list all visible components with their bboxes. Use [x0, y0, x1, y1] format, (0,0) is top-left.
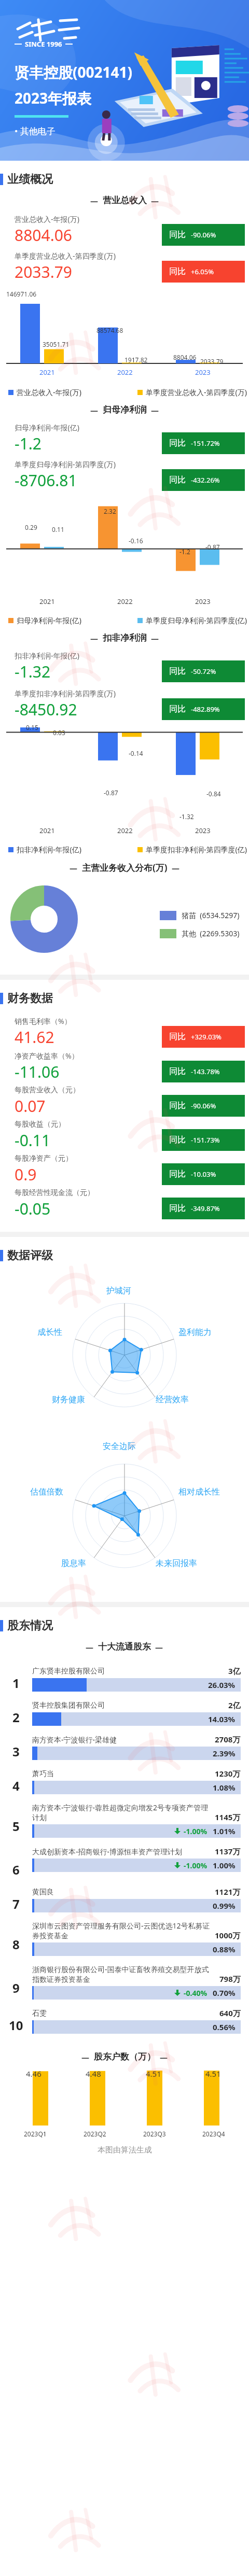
staticText: 0.11	[52, 525, 64, 533]
staticText: 0.99%	[213, 1901, 236, 1911]
staticText: -143.78%	[191, 1067, 220, 1076]
staticText: 2.39%	[213, 1748, 236, 1758]
button[interactable]: 同比	[162, 660, 245, 682]
staticText: 财务健康	[52, 1395, 85, 1405]
button[interactable]: 8	[0, 1916, 249, 1959]
staticText: 2.32	[104, 507, 116, 515]
staticText: —	[81, 2052, 90, 2062]
staticText: -1.32	[15, 661, 51, 682]
button[interactable]: 5	[0, 1797, 249, 1841]
staticText: 2023年报表	[15, 88, 92, 108]
staticText: 7	[12, 1895, 20, 1912]
staticText: 同比	[169, 230, 186, 240]
button[interactable]: 1	[0, 1660, 249, 1695]
button[interactable]: 2	[0, 1695, 249, 1729]
staticText: —	[155, 1642, 163, 1652]
button[interactable]: 7	[0, 1881, 249, 1916]
button[interactable]: 同比	[162, 224, 245, 246]
staticText: 1137万	[215, 1846, 241, 1856]
button[interactable]: 同比	[162, 469, 245, 491]
staticText: 营业总收入-年报(万)	[15, 214, 79, 224]
staticText: -0.87	[205, 543, 220, 551]
staticText: 0.07	[15, 1095, 46, 1117]
button[interactable]: 9	[0, 1959, 249, 2003]
staticText: 8804.06	[173, 353, 197, 361]
staticText: -482.89%	[191, 705, 220, 714]
staticText: 2021	[39, 826, 55, 835]
staticText: 0.70%	[213, 1988, 236, 1998]
button[interactable]: 3	[0, 1729, 249, 1763]
button[interactable]: 同比	[162, 1198, 245, 1219]
staticText: 单季度营业总收入-第四季度(万)	[15, 251, 116, 261]
staticText: 南方资本-宁波银行-蓉胜超微定向增发2号专项资产管理计划	[32, 1803, 211, 1822]
button[interactable]: 同比	[162, 1163, 245, 1185]
staticText: 9	[12, 1979, 20, 1996]
staticText: -151.73%	[191, 1135, 220, 1145]
staticText: 其他 (2269.5303)	[182, 928, 240, 938]
staticText: 同比	[169, 1066, 186, 1077]
staticText: 每股净资产（元）	[15, 1154, 73, 1163]
staticText: 4.51	[146, 2068, 161, 2079]
staticText: 1121万	[215, 1887, 241, 1897]
staticText: 2022	[117, 826, 133, 835]
staticText: 2023	[195, 597, 211, 606]
staticText: —	[70, 863, 78, 873]
staticText: 同比	[169, 1101, 186, 1111]
staticText: 0.56%	[213, 2022, 236, 2032]
staticText: +6.05%	[191, 267, 214, 276]
staticText: -1.32	[179, 812, 194, 821]
button[interactable]: 同比	[162, 1061, 245, 1082]
staticText: 同比	[169, 704, 186, 714]
button[interactable]: 财务数据	[0, 980, 249, 1009]
button[interactable]: 6	[0, 1841, 249, 1881]
staticText: 股东情况	[7, 1618, 53, 1633]
staticText: 2033.79	[15, 261, 72, 283]
staticText: 净资产收益率（%）	[15, 1051, 79, 1061]
staticText: 2022	[117, 597, 133, 606]
staticText: 本图由算法生成	[98, 2145, 152, 2155]
staticText: -1.00%	[184, 1861, 208, 1870]
button[interactable]: 同比	[162, 698, 245, 720]
staticText: 8	[12, 1936, 20, 1953]
staticText: -90.06%	[191, 1101, 216, 1110]
staticText: 萧巧当	[32, 1769, 211, 1779]
button[interactable]: 数据评级	[0, 1237, 249, 1266]
staticText: 同比	[169, 1169, 186, 1179]
staticText: 销售毛利率（%）	[15, 1016, 72, 1026]
button[interactable]: 同比	[162, 1095, 245, 1117]
staticText: —	[86, 1642, 94, 1652]
staticText: • 其他电子	[15, 125, 56, 137]
button[interactable]: 同比	[162, 1026, 245, 1048]
staticText: 1	[12, 1674, 20, 1692]
button[interactable]: 业绩概况	[0, 161, 249, 190]
button[interactable]: 同比	[162, 261, 245, 283]
staticText: 十大流通股东	[98, 1641, 151, 1652]
button[interactable]: 股东情况	[0, 1607, 249, 1636]
staticText: 0.9	[15, 1164, 37, 1185]
staticText: 营业总收入-年报(万)	[17, 387, 81, 397]
staticText: 14.03%	[208, 1714, 236, 1724]
staticText: 归母净利润	[103, 404, 147, 415]
staticText: -0.40%	[184, 1988, 208, 1998]
staticText: 2023Q3	[143, 2130, 166, 2138]
button[interactable]: 10	[0, 2003, 249, 2037]
staticText: 0.15	[26, 723, 38, 731]
staticText: 大成创新资本-招商银行-博源恒丰资产管理计划	[32, 1847, 211, 1856]
button[interactable]: 同比	[162, 1129, 245, 1151]
staticText: 2022	[117, 368, 133, 377]
button[interactable]: 同比	[162, 432, 245, 454]
staticText: 2023Q1	[24, 2130, 47, 2138]
button[interactable]: 4	[0, 1763, 249, 1797]
staticText: 2021	[39, 597, 55, 606]
staticText: 146971.06	[6, 290, 37, 298]
staticText: 扣非净利润-年报(亿)	[15, 651, 79, 660]
staticText: 黄国良	[32, 1888, 211, 1897]
staticText: -1.2	[15, 433, 42, 454]
staticText: —	[90, 633, 99, 643]
staticText: -0.84	[206, 790, 221, 798]
staticText: -50.72%	[191, 667, 216, 676]
staticText: 26.03%	[208, 1680, 236, 1690]
staticText: 广东贤丰控股有限公司	[32, 1667, 224, 1676]
staticText: -0.16	[129, 537, 143, 545]
staticText: 10	[9, 2017, 23, 2034]
